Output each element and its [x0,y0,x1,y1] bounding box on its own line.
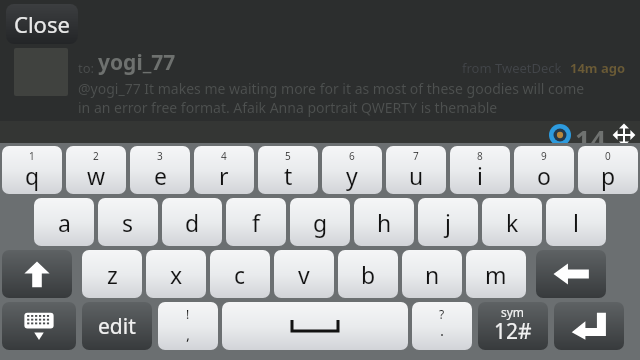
staticText: 14 [575,121,606,149]
staticText: w [87,160,106,191]
button[interactable]: q [2,146,62,194]
staticText: 5 [285,149,291,163]
staticText: d [185,207,200,238]
staticText: z [107,259,118,290]
staticText: i [477,160,483,191]
staticText: from TweetDeck [462,59,562,77]
staticText: yogi_77 [98,48,176,77]
button[interactable]: edit [82,302,152,350]
button[interactable]: Close [6,4,78,44]
button[interactable]: c [210,250,270,298]
button[interactable]: m [466,250,526,298]
staticText: 6 [349,149,355,163]
button[interactable]: g [290,198,350,246]
staticText: ! [186,306,190,322]
staticText: c [234,259,246,290]
button[interactable]: Hide keyboard [2,302,76,350]
staticText: j [445,207,451,238]
button[interactable]: x [146,250,206,298]
button[interactable]: j [418,198,478,246]
staticText: s [122,207,134,238]
button[interactable]: h [354,198,414,246]
button[interactable]: o [514,146,574,194]
staticText: 7 [413,149,419,163]
staticText: 2 [93,149,99,163]
staticText: r [219,160,229,191]
staticText: 3 [157,149,163,163]
button[interactable]: a [34,198,94,246]
staticText: p [601,160,616,191]
staticText: 9 [541,149,547,163]
staticText: x [170,259,183,290]
staticText: 1 [29,149,35,163]
staticText: e [154,160,167,191]
button[interactable]: p [578,146,638,194]
staticText: y [346,160,358,191]
button[interactable]: y [322,146,382,194]
staticText: f [252,207,260,238]
staticText: k [506,207,519,238]
staticText: to: [78,59,98,77]
staticText: u [409,160,424,191]
staticText: ? [439,306,445,322]
staticText: 12# [494,317,532,346]
button[interactable]: l [546,198,606,246]
staticText: n [425,259,440,290]
staticText: in an error free format. Afaik Anna port… [78,98,498,117]
staticText: 4 [221,149,227,163]
staticText: · [440,324,445,344]
button[interactable]: n [402,250,462,298]
staticText: o [537,160,551,191]
button[interactable]: u [386,146,446,194]
button[interactable]: Symbols [478,302,548,350]
button[interactable]: e [130,146,190,194]
staticText: , [186,324,191,344]
button[interactable]: Enter [554,302,624,350]
staticText: @yogi_77 It makes me waiting more for it… [78,79,585,98]
button[interactable]: · key [412,302,472,350]
staticText: h [377,207,392,238]
button[interactable]: r [194,146,254,194]
button[interactable]: k [482,198,542,246]
staticText: edit [98,312,136,341]
button[interactable]: b [338,250,398,298]
staticText: a [58,207,71,238]
staticText: t [284,160,293,191]
staticText: g [313,207,328,238]
button[interactable]: Shift [2,250,72,298]
button[interactable]: f [226,198,286,246]
button[interactable]: , key [158,302,218,350]
button[interactable]: t [258,146,318,194]
staticText: l [573,207,579,238]
button[interactable]: v [274,250,334,298]
staticText: 14m ago [570,59,626,77]
staticText: Close [14,9,70,39]
staticText: 8 [477,149,483,163]
staticText: sym [501,304,525,320]
staticText: m [485,259,507,290]
button[interactable]: Backspace [536,250,606,298]
staticText: v [298,259,310,290]
staticText: q [25,160,40,191]
button[interactable]: i [450,146,510,194]
button[interactable]: d [162,198,222,246]
button[interactable]: w [66,146,126,194]
staticText: b [361,259,376,290]
button[interactable]: z [82,250,142,298]
button[interactable]: Space [222,302,408,350]
button[interactable]: s [98,198,158,246]
staticText: 0 [605,149,611,163]
